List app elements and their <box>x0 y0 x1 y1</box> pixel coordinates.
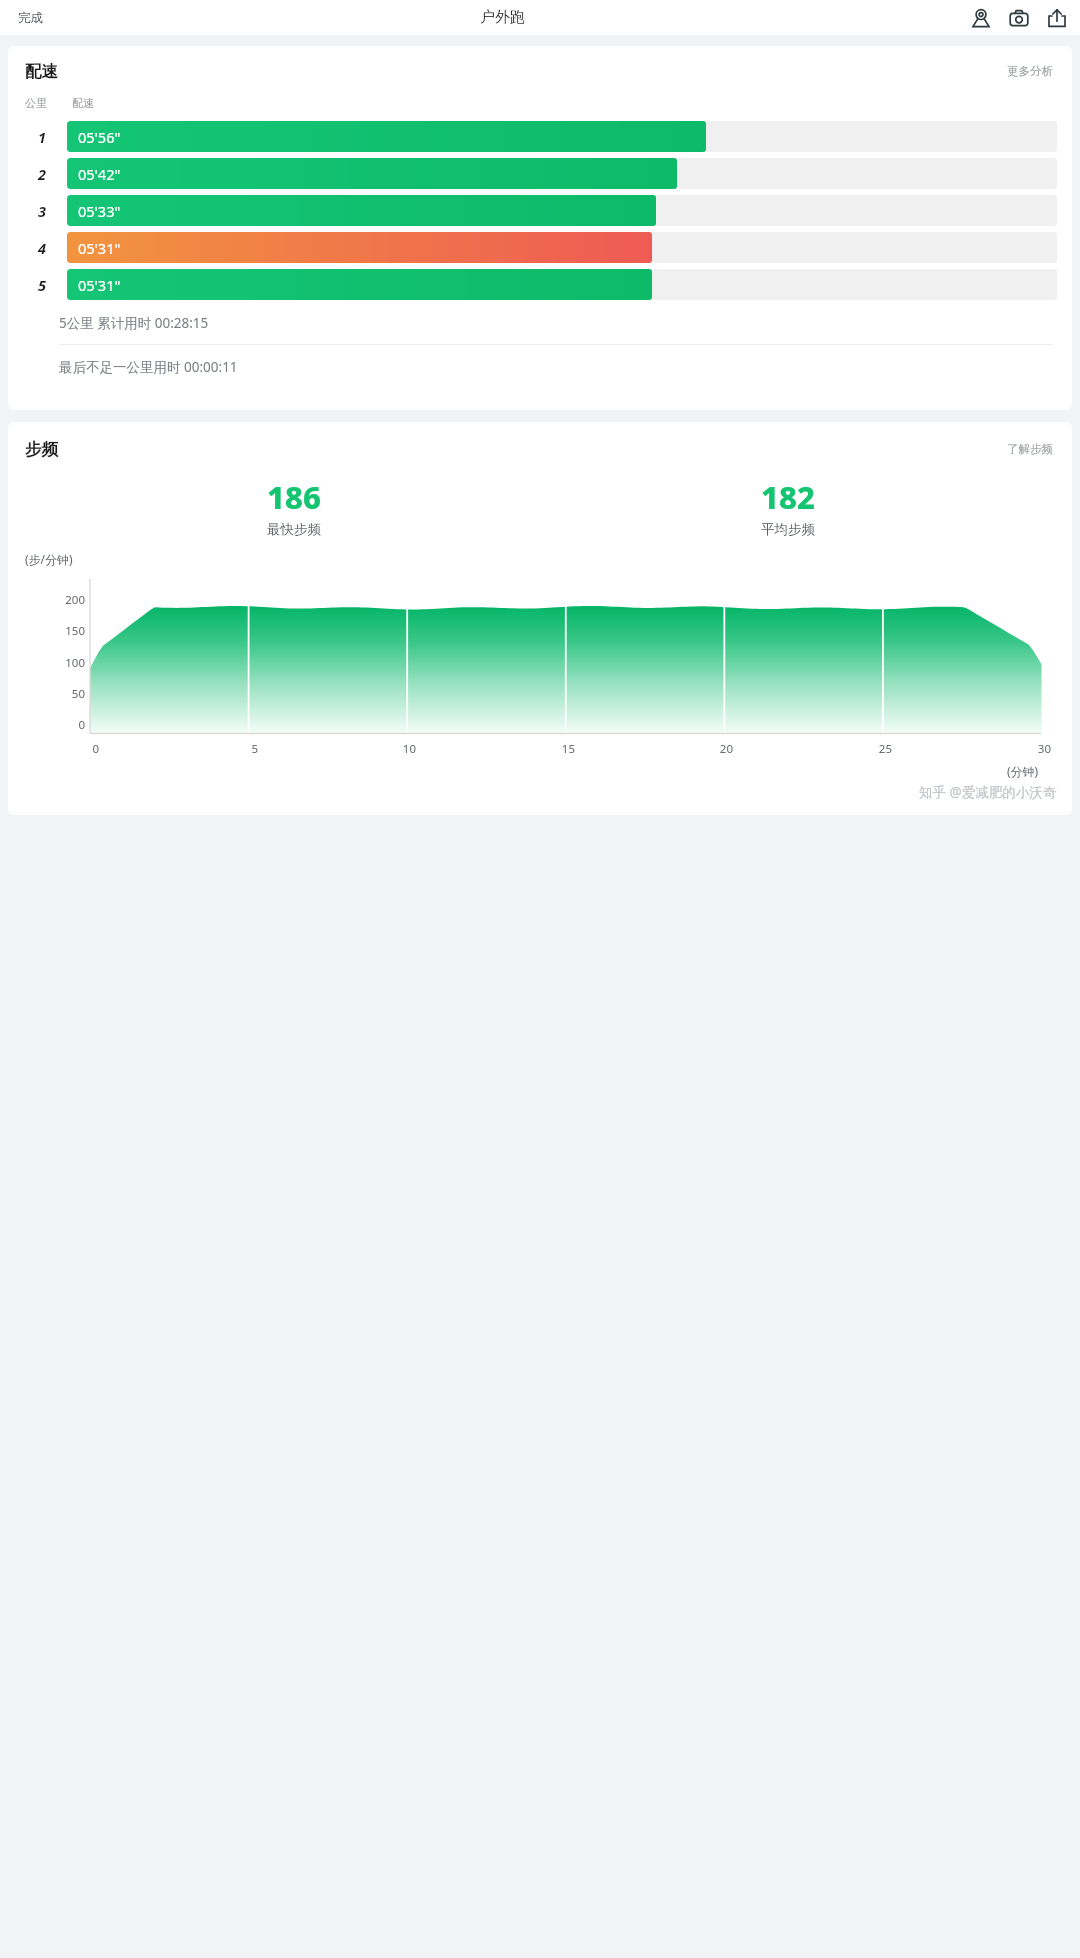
button[interactable]: 步频 <box>8 422 1072 815</box>
staticText: 完成 <box>18 10 43 26</box>
staticText: 186 <box>267 476 321 518</box>
staticText: 2 <box>38 164 46 184</box>
staticText: 200 <box>25 592 85 608</box>
staticText: 1 <box>38 127 46 147</box>
staticText: 4 <box>38 238 46 258</box>
staticText: 最后不足一公里用时 00:00:11 <box>59 358 238 376</box>
staticText: 户外跑 <box>480 8 525 27</box>
staticText: 配速 <box>72 96 94 110</box>
staticText: (步/分钟) <box>25 551 73 567</box>
button[interactable]: 完成 <box>12 5 49 31</box>
staticText: 150 <box>25 623 85 639</box>
staticText: 更多分析 <box>1007 64 1053 78</box>
staticText: 10 <box>34 741 416 757</box>
staticText: 5公里 累计用时 00:28:15 <box>59 314 209 332</box>
staticText: 配速 <box>25 61 58 82</box>
staticText: 100 <box>25 655 85 671</box>
staticText: 0 <box>34 741 99 757</box>
staticText: 05'31" <box>78 275 121 295</box>
staticText: 50 <box>25 686 85 702</box>
staticText: 05'33" <box>78 201 121 221</box>
staticText: 182 <box>761 476 815 518</box>
staticText: 30 <box>34 741 1051 757</box>
button[interactable]: Map route <box>967 4 995 32</box>
staticText: 5 <box>38 275 46 295</box>
button[interactable]: Share <box>1043 4 1071 32</box>
staticText: 05'42" <box>78 164 121 184</box>
button[interactable]: 5 <box>25 268 1057 301</box>
staticText: 0 <box>25 717 85 733</box>
staticText: 最快步频 <box>267 521 321 538</box>
staticText: 15 <box>34 741 575 757</box>
button[interactable]: 2 <box>25 157 1057 190</box>
staticText: 05'31" <box>78 238 121 258</box>
button[interactable]: 3 <box>25 194 1057 227</box>
button[interactable]: 更多分析 <box>1003 60 1057 82</box>
staticText: 公里 <box>25 96 47 110</box>
staticText: 步频 <box>25 439 58 460</box>
staticText: 知乎 @爱减肥的小沃奇 <box>919 783 1057 801</box>
button[interactable]: Camera <box>1005 4 1033 32</box>
staticText: 3 <box>38 201 46 221</box>
staticText: 20 <box>34 741 733 757</box>
button[interactable]: 4 <box>25 231 1057 264</box>
button[interactable]: 配速 <box>8 46 1072 410</box>
staticText: 5 <box>34 741 258 757</box>
button[interactable]: 了解步频 <box>1003 438 1057 460</box>
staticText: 25 <box>34 741 892 757</box>
button[interactable]: 1 <box>25 120 1057 153</box>
staticText: 平均步频 <box>761 521 815 538</box>
staticText: (分钟) <box>1007 763 1039 779</box>
staticText: 了解步频 <box>1007 442 1053 456</box>
staticText: 05'56" <box>78 127 121 147</box>
